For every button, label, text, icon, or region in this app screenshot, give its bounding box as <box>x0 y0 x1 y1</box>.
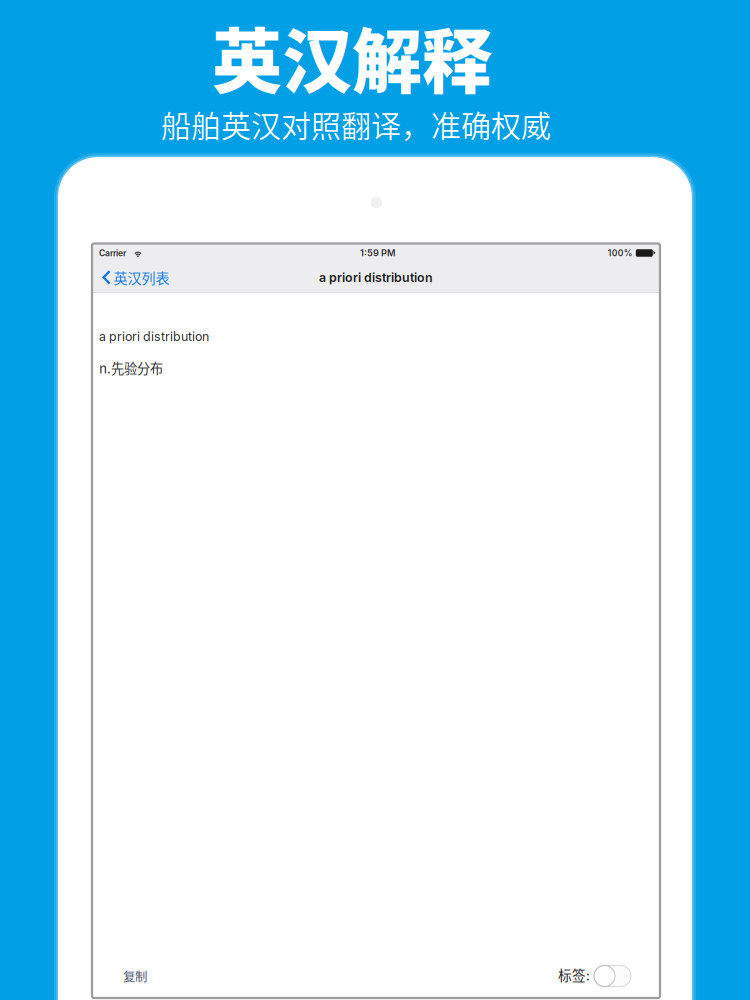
staticText: Carrier <box>99 248 126 258</box>
staticText: 英汉解释 <box>212 6 492 108</box>
button[interactable]: 复制 <box>118 959 152 993</box>
staticText: 100% <box>608 248 633 258</box>
button[interactable]: 标签 <box>594 965 631 986</box>
button[interactable]: 英汉列表 <box>92 263 175 292</box>
staticText: 标签: <box>558 965 590 984</box>
staticText: 船舶英汉对照翻译，准确权威 <box>161 102 551 146</box>
staticText: a priori distribution <box>319 270 433 285</box>
staticText: 英汉列表 <box>113 267 169 288</box>
staticText: 1:59 PM <box>360 247 395 258</box>
staticText: n.先验分布 <box>99 358 163 377</box>
staticText: 复制 <box>123 967 147 985</box>
staticText: a priori distribution <box>99 329 209 344</box>
